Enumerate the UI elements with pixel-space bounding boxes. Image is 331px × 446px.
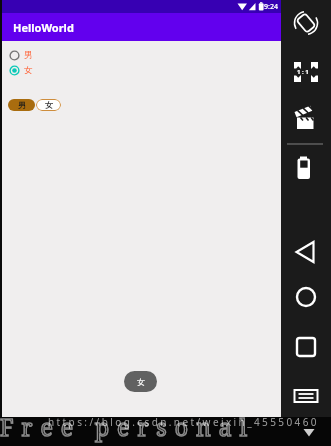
button[interactable]	[287, 58, 325, 86]
button[interactable]	[287, 382, 325, 410]
button[interactable]	[287, 333, 325, 361]
button[interactable]: 女	[9, 63, 33, 78]
button[interactable]: 男	[8, 99, 35, 111]
staticText: 女	[24, 65, 33, 76]
button[interactable]: HelloWorld	[2, 13, 281, 41]
staticText: 女	[137, 377, 145, 387]
staticText: 1 : 1	[297, 68, 309, 76]
button[interactable]	[287, 238, 325, 266]
staticText: https://blog.csdn.net/weixin_45550460	[48, 415, 319, 429]
button[interactable]: 男	[9, 48, 33, 63]
button[interactable]	[287, 9, 325, 37]
staticText: 男	[24, 50, 33, 61]
staticText: 女	[45, 100, 53, 110]
button[interactable]: 女	[36, 99, 61, 111]
staticText: HelloWorld	[13, 20, 74, 35]
staticText: 男	[18, 100, 26, 110]
button[interactable]	[287, 154, 325, 182]
staticText: 9:24	[264, 2, 278, 12]
button[interactable]	[287, 283, 325, 311]
button[interactable]	[287, 105, 325, 133]
staticText: Free personal	[0, 411, 255, 442]
